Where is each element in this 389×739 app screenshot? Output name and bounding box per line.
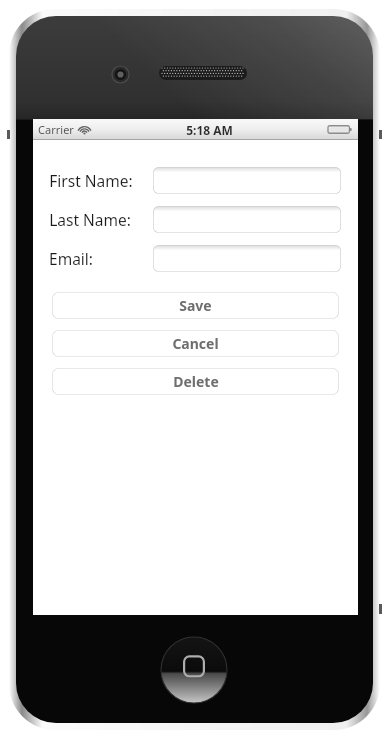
staticText: Carrier [38,122,74,137]
staticText: Save [179,296,212,315]
staticText: 5:18 AM [186,122,233,138]
staticText: First Name: [49,170,133,191]
button[interactable]: Cancel [52,330,339,357]
staticText: Last Name: [49,209,131,230]
staticText: Email: [49,248,93,269]
button[interactable] [153,206,341,233]
button[interactable] [153,245,341,272]
staticText: Cancel [172,334,219,353]
button[interactable] [153,167,341,194]
button[interactable]: Delete [52,368,339,395]
staticText: Delete [173,372,219,391]
button[interactable]: Home [161,637,227,703]
button[interactable]: Save [52,292,339,319]
